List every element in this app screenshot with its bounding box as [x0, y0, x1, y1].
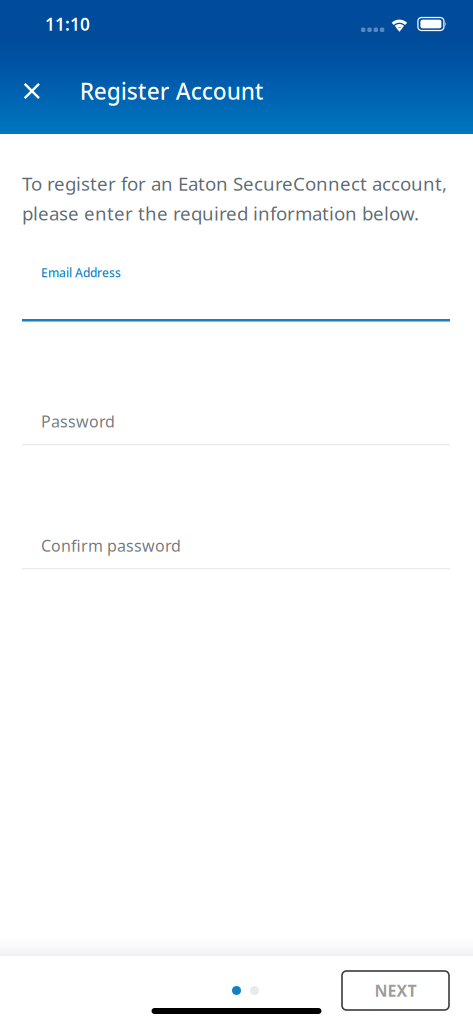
button[interactable]: Close — [0, 47, 64, 134]
button[interactable]: NEXT — [342, 971, 449, 1010]
staticText: NEXT — [374, 980, 416, 1001]
staticText: Password — [41, 411, 115, 432]
staticText: 11:10 — [45, 12, 90, 35]
staticText: Email Address — [41, 265, 121, 280]
staticText: To register for an Eaton SecureConnect a… — [22, 171, 447, 226]
staticText: Register Account — [80, 76, 264, 106]
staticText: Confirm password — [41, 535, 181, 556]
